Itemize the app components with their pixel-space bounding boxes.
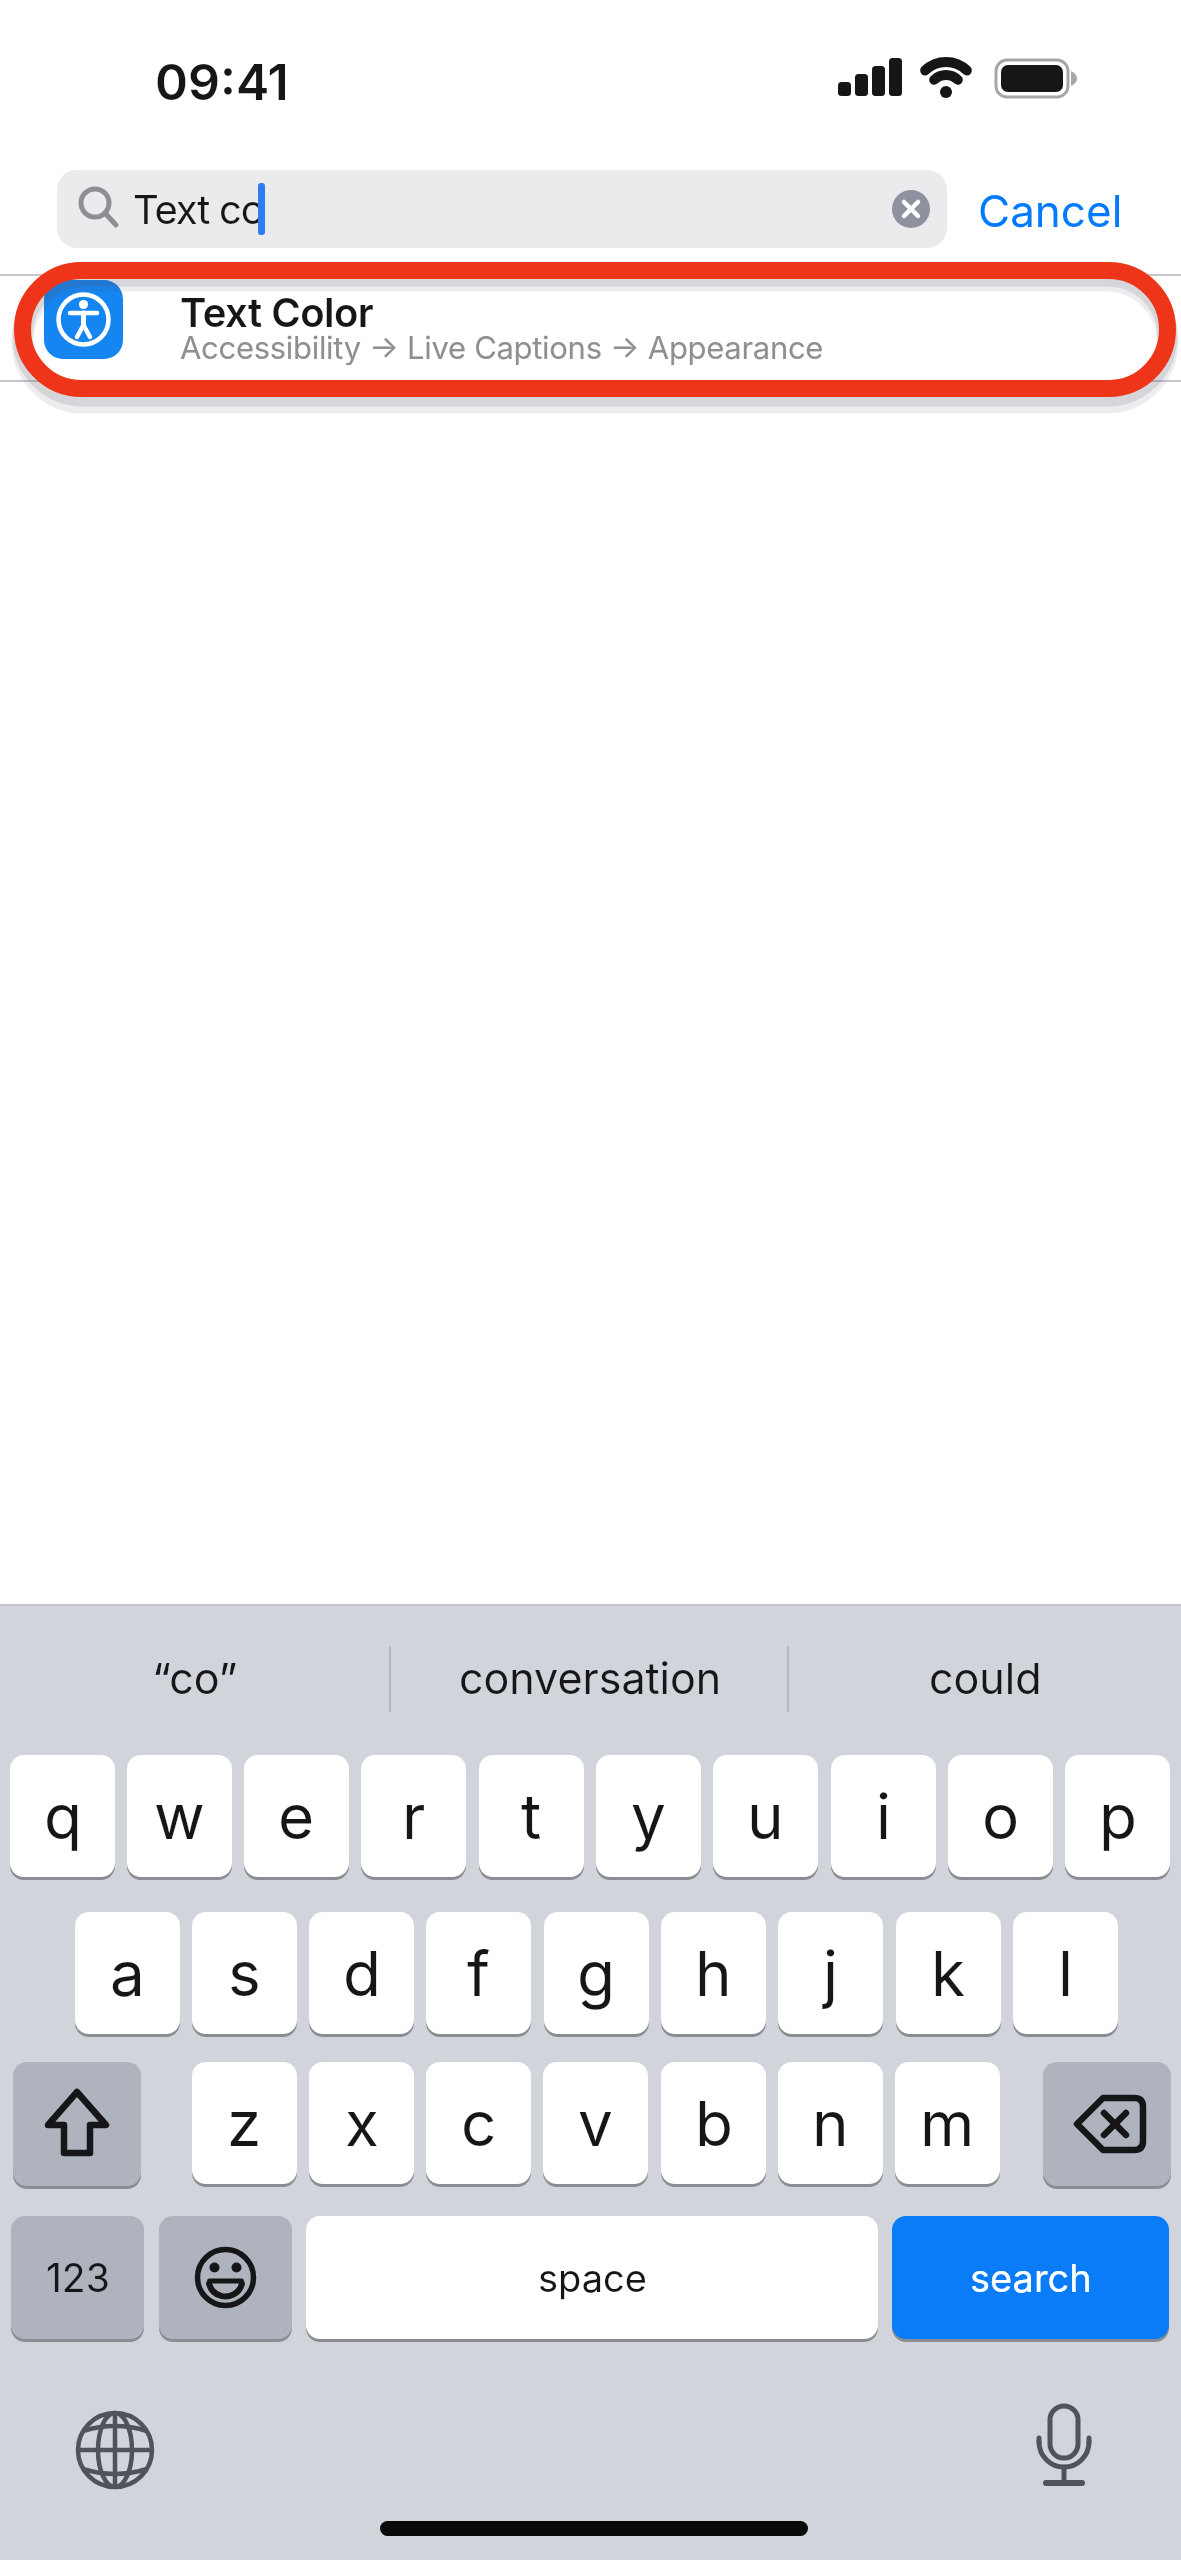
button[interactable]: conversation: [410, 1630, 770, 1725]
button[interactable]: Cancel: [978, 172, 1138, 248]
staticText: i: [876, 1779, 892, 1854]
button[interactable]: [1043, 2062, 1171, 2186]
staticText: m: [920, 2086, 975, 2161]
staticText: e: [278, 1779, 315, 1854]
staticText: l: [1058, 1936, 1074, 2011]
staticText: q: [44, 1779, 82, 1854]
staticText: space: [538, 2255, 647, 2301]
button[interactable]: [57, 170, 947, 248]
staticText: Text co: [133, 185, 264, 233]
button[interactable]: [13, 2062, 141, 2186]
button[interactable]: s: [192, 1912, 297, 2034]
staticText: r: [402, 1779, 426, 1854]
button[interactable]: x: [309, 2062, 414, 2184]
staticText: 09:41: [155, 52, 289, 108]
staticText: x: [345, 2086, 379, 2161]
button[interactable]: space: [306, 2216, 878, 2339]
staticText: f: [467, 1936, 490, 2011]
button[interactable]: q: [10, 1755, 115, 1877]
staticText: j: [823, 1936, 839, 2011]
staticText: t: [521, 1779, 542, 1854]
staticText: Cancel: [978, 184, 1123, 237]
button[interactable]: r: [361, 1755, 466, 1877]
staticText: a: [110, 1936, 145, 2011]
staticText: z: [227, 2086, 262, 2161]
button[interactable]: could: [800, 1630, 1170, 1725]
staticText: u: [747, 1779, 784, 1854]
button[interactable]: 123: [11, 2216, 144, 2339]
button[interactable]: search: [892, 2216, 1169, 2339]
button[interactable]: y: [596, 1755, 701, 1877]
staticText: “co”: [152, 1652, 238, 1704]
staticText: search: [970, 2255, 1092, 2301]
button[interactable]: w: [127, 1755, 232, 1877]
staticText: k: [931, 1936, 966, 2011]
button[interactable]: i: [831, 1755, 936, 1877]
staticText: conversation: [459, 1652, 722, 1704]
button[interactable]: [60, 2395, 172, 2507]
button[interactable]: t: [479, 1755, 584, 1877]
button[interactable]: k: [896, 1912, 1001, 2034]
button[interactable]: b: [661, 2062, 766, 2184]
button[interactable]: e: [244, 1755, 349, 1877]
staticText: 123: [46, 2254, 110, 2301]
button[interactable]: u: [713, 1755, 818, 1877]
button[interactable]: o: [948, 1755, 1053, 1877]
button[interactable]: j: [778, 1912, 883, 2034]
button[interactable]: f: [426, 1912, 531, 2034]
button[interactable]: [159, 2216, 292, 2339]
button[interactable]: l: [1013, 1912, 1118, 2034]
button[interactable]: [1008, 2395, 1120, 2507]
staticText: could: [929, 1652, 1042, 1704]
staticText: p: [1099, 1779, 1137, 1854]
staticText: h: [695, 1936, 732, 2011]
button[interactable]: z: [192, 2062, 297, 2184]
button[interactable]: h: [661, 1912, 766, 2034]
staticText: Text Color: [180, 288, 374, 332]
button[interactable]: “co”: [20, 1630, 370, 1725]
button[interactable]: a: [75, 1912, 180, 2034]
staticText: v: [578, 2086, 613, 2161]
staticText: c: [461, 2086, 497, 2161]
staticText: Accessibility → Live Captions → Appearan…: [180, 329, 824, 365]
staticText: b: [695, 2086, 733, 2161]
staticText: g: [577, 1936, 616, 2011]
staticText: o: [982, 1779, 1020, 1854]
button[interactable]: n: [778, 2062, 883, 2184]
button[interactable]: p: [1065, 1755, 1170, 1877]
staticText: y: [631, 1779, 666, 1854]
button[interactable]: g: [544, 1912, 649, 2034]
staticText: n: [812, 2086, 849, 2161]
button[interactable]: c: [426, 2062, 531, 2184]
button[interactable]: v: [543, 2062, 648, 2184]
staticText: s: [228, 1936, 261, 2011]
staticText: d: [343, 1936, 381, 2011]
staticText: w: [154, 1779, 205, 1854]
button[interactable]: [0, 276, 1181, 381]
button[interactable]: d: [309, 1912, 414, 2034]
button[interactable]: m: [895, 2062, 1000, 2184]
